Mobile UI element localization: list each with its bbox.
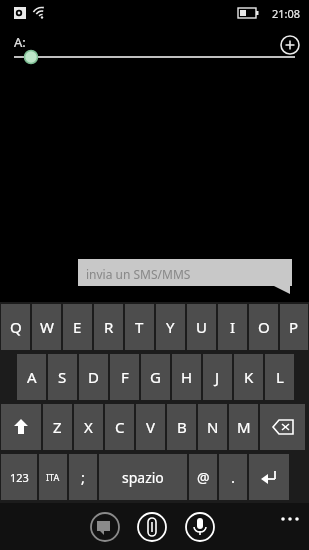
button[interactable]: ;: [69, 454, 97, 500]
button[interactable]: Enter: [249, 454, 289, 500]
staticText: N: [207, 417, 219, 437]
staticText: I: [230, 317, 236, 337]
staticText: H: [181, 367, 193, 387]
staticText: F: [121, 367, 129, 387]
button[interactable]: D: [79, 354, 108, 400]
staticText: Y: [166, 317, 175, 337]
button[interactable]: B: [167, 404, 196, 450]
button[interactable]: Z: [43, 404, 72, 450]
button[interactable]: S: [48, 354, 77, 400]
button[interactable]: Quick text: [91, 513, 119, 541]
button[interactable]: ITA: [39, 454, 67, 500]
staticText: L: [276, 367, 284, 387]
staticText: .: [231, 467, 236, 487]
button[interactable]: M: [229, 404, 258, 450]
button[interactable]: J: [203, 354, 232, 400]
staticText: P: [289, 317, 299, 337]
staticText: E: [73, 317, 82, 337]
button[interactable]: P: [280, 304, 308, 350]
button[interactable]: T: [125, 304, 154, 350]
button[interactable]: .: [219, 454, 247, 500]
staticText: O: [258, 317, 270, 337]
button[interactable]: L: [265, 354, 294, 400]
staticText: @: [197, 468, 210, 487]
button[interactable]: W: [32, 304, 61, 350]
staticText: D: [88, 367, 99, 387]
button[interactable]: V: [136, 404, 165, 450]
staticText: T: [135, 317, 144, 337]
staticText: R: [104, 317, 114, 337]
button[interactable]: Backspace: [260, 404, 305, 450]
button[interactable]: Add recipient: [280, 35, 300, 55]
staticText: 123: [10, 470, 29, 485]
button[interactable]: @: [189, 454, 217, 500]
staticText: V: [146, 417, 156, 437]
button[interactable]: Voice: [186, 513, 214, 541]
staticText: Z: [53, 417, 62, 437]
staticText: A:: [14, 33, 26, 51]
button[interactable]: K: [234, 354, 263, 400]
button[interactable]: spazio: [99, 454, 187, 500]
staticText: M: [237, 417, 251, 437]
staticText: W: [40, 317, 54, 337]
button[interactable]: F: [110, 354, 139, 400]
button[interactable]: C: [105, 404, 134, 450]
button[interactable]: More options: [275, 508, 303, 536]
button[interactable]: Shift: [1, 404, 41, 450]
staticText: S: [58, 367, 67, 387]
staticText: G: [150, 367, 161, 387]
staticText: B: [177, 417, 187, 437]
staticText: A: [27, 367, 37, 387]
staticText: U: [196, 317, 207, 337]
button[interactable]: Attach: [138, 513, 166, 541]
button[interactable]: X: [74, 404, 103, 450]
staticText: J: [215, 367, 220, 387]
button[interactable]: E: [63, 304, 92, 350]
button[interactable]: O: [249, 304, 278, 350]
staticText: X: [84, 417, 93, 437]
staticText: K: [244, 367, 254, 387]
staticText: ;: [81, 467, 86, 487]
button[interactable]: H: [172, 354, 201, 400]
button[interactable]: G: [141, 354, 170, 400]
button[interactable]: I: [218, 304, 247, 350]
button[interactable]: R: [94, 304, 123, 350]
button[interactable]: A: [17, 354, 46, 400]
staticText: invia un SMS/MMS: [86, 266, 191, 282]
button[interactable]: Y: [156, 304, 185, 350]
button[interactable]: N: [198, 404, 227, 450]
button[interactable]: 123: [1, 454, 37, 500]
button[interactable]: Q: [1, 304, 30, 350]
button[interactable]: U: [187, 304, 216, 350]
staticText: Q: [10, 317, 22, 337]
staticText: ITA: [46, 471, 60, 483]
staticText: spazio: [122, 468, 164, 487]
staticText: 21:08: [272, 6, 301, 21]
staticText: C: [115, 417, 125, 437]
